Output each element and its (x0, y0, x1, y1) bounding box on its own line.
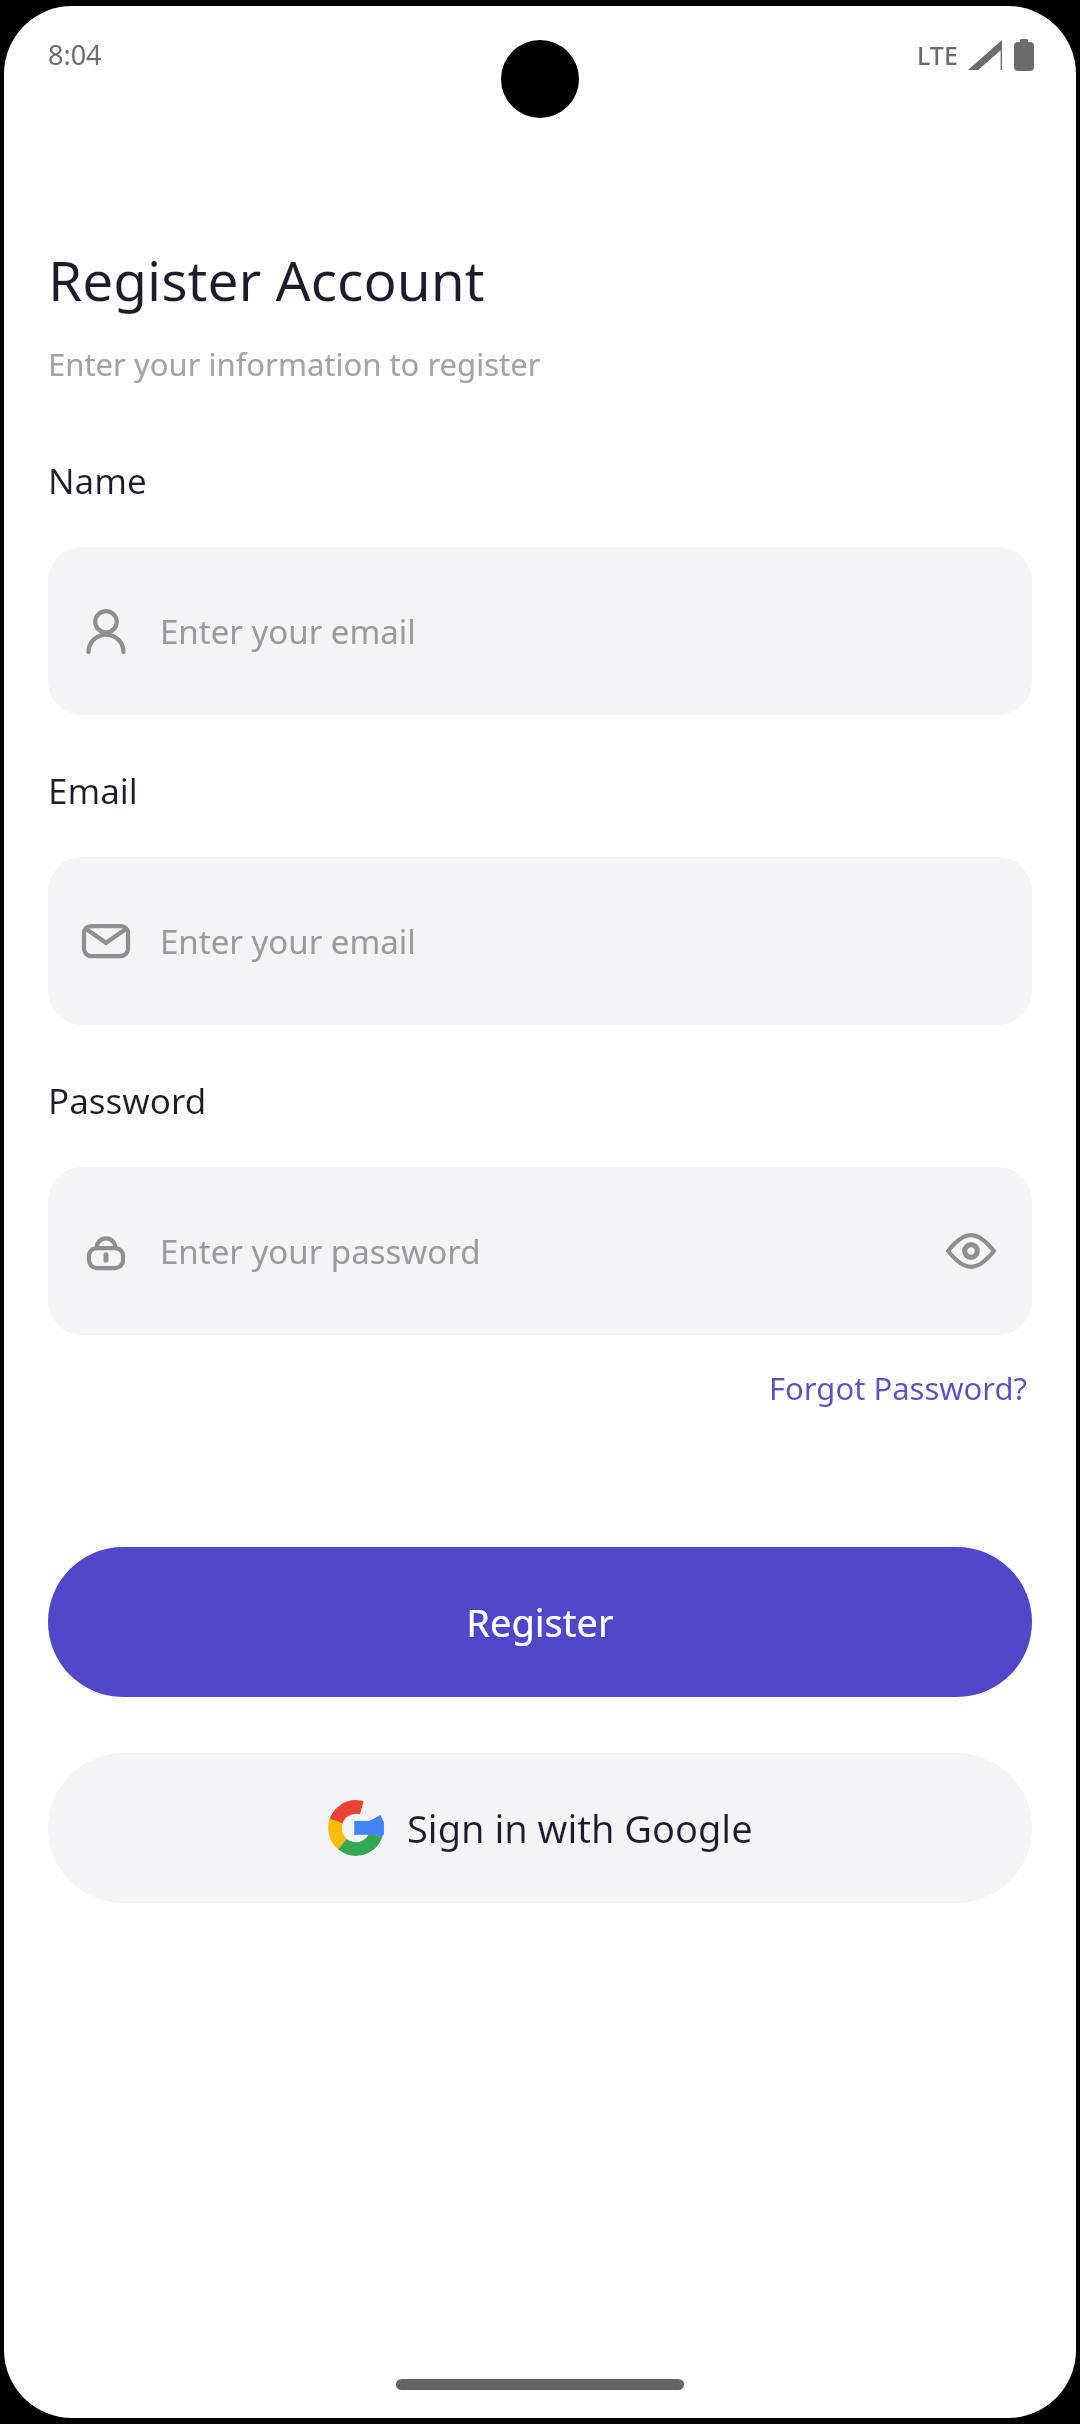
button[interactable]: Register (48, 1547, 1032, 1697)
button[interactable]: Sign in with Google (48, 1753, 1032, 1903)
staticText: Enter your email (160, 609, 1000, 654)
staticText: Password (48, 1077, 207, 1125)
staticText: Enter your information to register (48, 343, 541, 385)
staticText: Enter your password (160, 1229, 942, 1274)
button[interactable]: Show password (942, 1222, 1000, 1280)
staticText: Enter your email (160, 919, 1000, 964)
button[interactable]: Enter your password (48, 1167, 1032, 1335)
staticText: Email (48, 767, 138, 815)
staticText: LTE (917, 38, 958, 72)
button[interactable]: Enter your email (48, 547, 1032, 715)
staticText: Forgot Password? (769, 1367, 1028, 1409)
staticText: Sign in with Google (407, 1802, 753, 1854)
staticText: Name (48, 457, 147, 505)
button[interactable]: Enter your email (48, 857, 1032, 1025)
button[interactable]: Forgot Password? (765, 1361, 1032, 1415)
staticText: 8:04 (48, 36, 102, 73)
staticText: Register (466, 1596, 614, 1648)
staticText: Register Account (48, 242, 485, 317)
